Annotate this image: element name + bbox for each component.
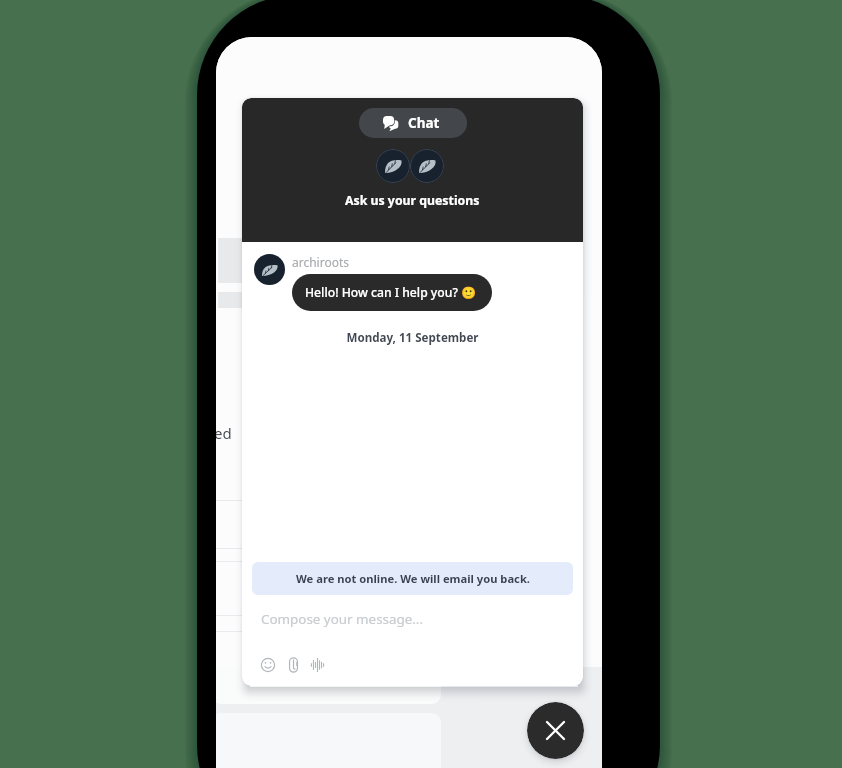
staticText: ed [216, 423, 232, 443]
staticText: Compose your message... [261, 610, 424, 628]
button[interactable]: Voice message [310, 657, 325, 673]
staticText: Hello! How can I help you? 🙂 [305, 284, 477, 301]
staticText: archiroots [292, 254, 350, 270]
button[interactable]: Emoji [260, 657, 276, 673]
button[interactable]: Compose your message... [242, 595, 583, 643]
button[interactable]: Attach file [288, 657, 299, 673]
staticText: Chat [408, 114, 440, 132]
staticText: Monday, 11 September [242, 330, 583, 346]
button[interactable]: Chat [359, 108, 467, 138]
staticText: Ask us your questions [345, 192, 480, 209]
staticText: We are not online. We will email you bac… [296, 571, 530, 586]
button[interactable]: Close chat [527, 702, 584, 759]
